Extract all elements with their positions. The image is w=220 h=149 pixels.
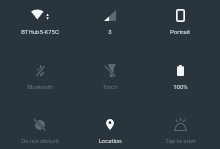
button[interactable]: Torch [75, 49, 145, 104]
staticText: 100% [173, 83, 188, 90]
staticText: 3 [108, 28, 112, 35]
staticText: Bluetooth [27, 83, 53, 90]
button[interactable]: Location [75, 103, 145, 149]
staticText: Location [98, 137, 122, 144]
button[interactable]: Screen cast [145, 103, 215, 149]
button[interactable]: Mobile data [75, 0, 145, 49]
button[interactable]: Wi-Fi [5, 0, 75, 49]
staticText: BTHub5-K75C [21, 28, 59, 35]
button[interactable]: Do not disturb [5, 103, 75, 149]
button[interactable]: Battery [145, 49, 215, 104]
staticText: Do not disturb [21, 137, 59, 144]
staticText: Tap to start [165, 137, 196, 144]
staticText: Torch [102, 83, 118, 90]
button[interactable]: Auto rotate [145, 0, 215, 49]
staticText: Portrait [170, 28, 190, 35]
button[interactable]: Bluetooth [5, 49, 75, 104]
